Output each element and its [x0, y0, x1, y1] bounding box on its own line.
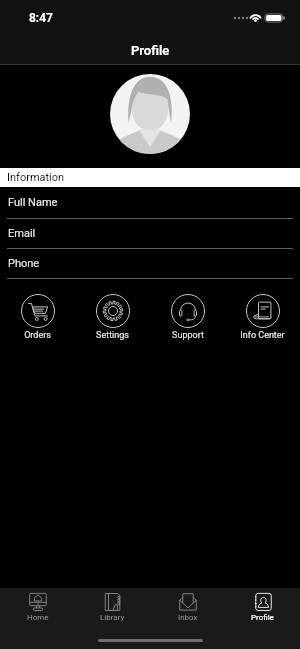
- button[interactable]: Library: [75, 593, 150, 622]
- staticText: Inbox: [178, 613, 198, 622]
- button[interactable]: Home: [0, 593, 75, 622]
- staticText: Info Center: [240, 330, 285, 341]
- button[interactable]: Email: [0, 219, 300, 249]
- staticText: Support: [172, 330, 204, 341]
- staticText: Phone: [8, 257, 40, 270]
- button[interactable]: Settings: [75, 294, 150, 341]
- button[interactable]: Phone: [0, 249, 300, 279]
- button[interactable]: Info Center: [225, 294, 300, 341]
- button[interactable]: Inbox: [150, 593, 225, 622]
- staticText: Profile: [251, 613, 274, 622]
- staticText: Full Name: [8, 196, 58, 209]
- staticText: Home: [27, 613, 49, 622]
- staticText: Information: [7, 171, 65, 184]
- button[interactable]: Profile: [225, 593, 300, 622]
- button[interactable]: Full Name: [0, 187, 300, 219]
- staticText: Settings: [96, 330, 129, 341]
- button[interactable]: Support: [150, 294, 225, 341]
- staticText: 8:47: [29, 11, 53, 25]
- staticText: Library: [100, 613, 125, 622]
- button[interactable]: Orders: [0, 294, 75, 341]
- staticText: Email: [8, 227, 36, 240]
- staticText: Profile: [131, 43, 170, 58]
- staticText: Orders: [24, 330, 51, 341]
